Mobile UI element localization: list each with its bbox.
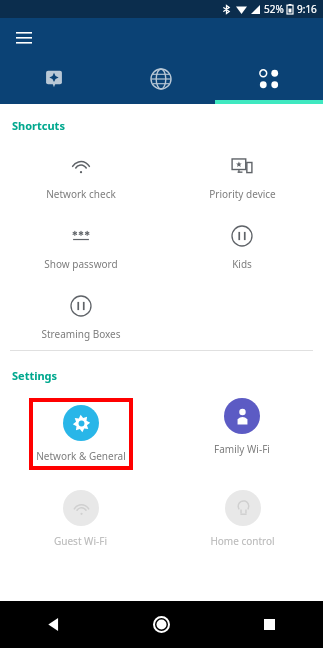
staticText: Show password xyxy=(44,257,118,271)
button[interactable]: Priority device xyxy=(161,155,323,201)
button[interactable]: Home control xyxy=(210,490,275,548)
button[interactable]: Streaming Boxes xyxy=(0,295,161,341)
button[interactable]: Kids xyxy=(161,225,323,271)
button[interactable]: Family Wi-Fi xyxy=(214,398,270,456)
staticText: Shortcuts xyxy=(12,118,65,133)
staticText: Guest Wi-Fi xyxy=(54,534,107,548)
button[interactable]: Feed xyxy=(0,58,107,100)
button[interactable]: Guest Wi-Fi xyxy=(54,490,107,548)
staticText: Network check xyxy=(46,187,116,201)
staticText: Priority device xyxy=(209,187,276,201)
staticText: 52% xyxy=(264,2,284,16)
button[interactable]: Recents xyxy=(215,601,323,648)
staticText: Kids xyxy=(232,257,252,271)
button[interactable]: Web xyxy=(107,58,215,100)
button[interactable]: Network check xyxy=(0,155,161,201)
staticText: Streaming Boxes xyxy=(41,327,121,341)
button[interactable]: Apps xyxy=(215,58,323,100)
staticText: 9:16 xyxy=(297,2,317,16)
staticText: Settings xyxy=(12,368,58,383)
staticText: Home control xyxy=(210,534,275,548)
button[interactable]: Back xyxy=(0,601,107,648)
button[interactable]: Home xyxy=(107,601,215,648)
staticText: Network & General xyxy=(36,449,126,463)
button[interactable]: Menu xyxy=(8,22,40,54)
button[interactable]: Network & General xyxy=(36,405,126,463)
staticText: Family Wi-Fi xyxy=(214,442,270,456)
button[interactable]: Show password xyxy=(0,225,161,271)
